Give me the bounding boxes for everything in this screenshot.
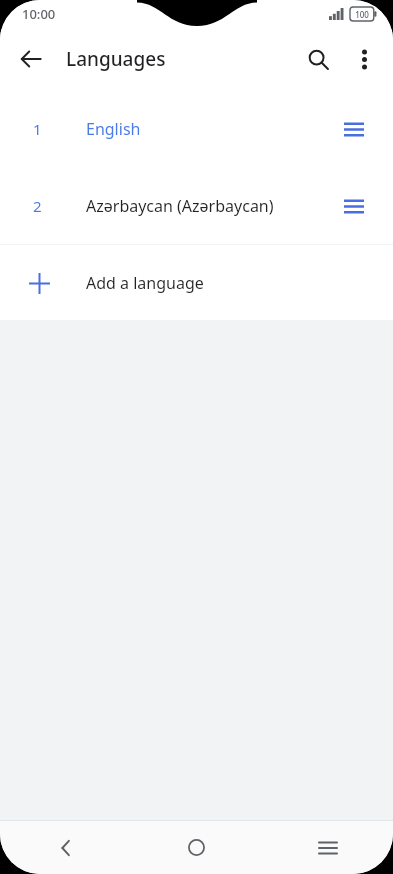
staticText: 100 bbox=[355, 9, 369, 20]
staticText: 10:00 bbox=[22, 5, 56, 23]
button[interactable]: Search bbox=[295, 36, 341, 82]
button[interactable]: 2 bbox=[0, 167, 393, 244]
button[interactable]: 1 bbox=[0, 90, 393, 167]
staticText: Languages bbox=[66, 46, 166, 72]
button[interactable]: Recent apps bbox=[262, 821, 393, 874]
button[interactable]: Reorder Azərbaycan (Azərbaycan) bbox=[337, 189, 371, 223]
staticText: 2 bbox=[33, 196, 42, 216]
button[interactable]: Home bbox=[131, 821, 262, 874]
button[interactable]: More options bbox=[341, 36, 387, 82]
staticText: Azərbaycan (Azərbaycan) bbox=[86, 195, 274, 217]
staticText: 1 bbox=[33, 119, 42, 139]
button[interactable]: Back bbox=[9, 37, 53, 81]
button[interactable]: Add a language bbox=[0, 245, 393, 320]
button[interactable]: Reorder English bbox=[337, 112, 371, 146]
button[interactable]: Back bbox=[0, 821, 131, 874]
staticText: English bbox=[86, 118, 141, 140]
staticText: Add a language bbox=[86, 272, 204, 294]
